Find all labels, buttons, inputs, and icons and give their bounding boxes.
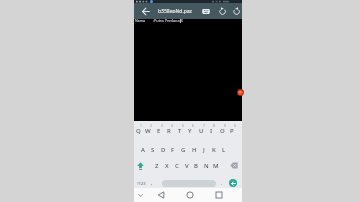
- button[interactable]: W: [143, 126, 153, 136]
- button[interactable]: S: [148, 145, 158, 155]
- button[interactable]: L: [219, 145, 229, 155]
- button[interactable]: ,: [148, 178, 156, 188]
- button[interactable]: [155, 189, 167, 201]
- button[interactable]: I: [206, 126, 216, 136]
- button[interactable]: V: [182, 161, 192, 171]
- staticText: V: [185, 162, 189, 170]
- button[interactable]: F: [168, 145, 178, 155]
- staticText: B: [194, 162, 198, 170]
- button[interactable]: [135, 160, 146, 171]
- staticText: ,: [151, 180, 153, 187]
- staticText: I: [210, 127, 213, 135]
- button[interactable]: Z: [152, 161, 162, 171]
- button[interactable]: X: [162, 161, 172, 171]
- button[interactable]: [200, 5, 212, 18]
- staticText: N: [204, 162, 209, 170]
- staticText: F: [171, 146, 175, 154]
- button[interactable]: Q: [133, 126, 143, 136]
- staticText: 4: [171, 124, 173, 128]
- button[interactable]: U: [196, 126, 206, 136]
- staticText: Nama: [135, 18, 146, 23]
- button[interactable]: A: [138, 145, 148, 155]
- button[interactable]: C: [172, 161, 182, 171]
- staticText: Y: [188, 127, 192, 135]
- staticText: 7: [203, 124, 205, 128]
- staticText: 3: [161, 124, 163, 128]
- staticText: 1: [140, 124, 142, 128]
- staticText: U: [199, 127, 204, 135]
- staticText: G: [181, 146, 186, 154]
- button[interactable]: H: [189, 145, 199, 155]
- button[interactable]: G: [178, 145, 188, 155]
- staticText: Z: [155, 162, 159, 170]
- button[interactable]: O: [217, 126, 227, 136]
- button[interactable]: [230, 5, 243, 18]
- staticText: b358eoNd.paz: [158, 8, 192, 15]
- button[interactable]: ?123: [135, 178, 148, 188]
- staticText: .: [221, 180, 223, 187]
- button[interactable]: [227, 160, 239, 171]
- staticText: D: [161, 146, 166, 154]
- staticText: 2: [150, 124, 152, 128]
- staticText: W: [145, 127, 151, 135]
- staticText: C: [175, 162, 179, 170]
- button[interactable]: B: [191, 161, 201, 171]
- staticText: :Putra Perdana 3: [153, 18, 183, 23]
- staticText: K: [212, 146, 216, 154]
- staticText: ?123: [137, 181, 146, 186]
- button[interactable]: [162, 180, 216, 187]
- staticText: P: [230, 127, 234, 135]
- button[interactable]: N: [201, 161, 211, 171]
- button[interactable]: R: [164, 126, 174, 136]
- staticText: T: [178, 127, 182, 135]
- button[interactable]: M: [211, 161, 221, 171]
- button[interactable]: E: [154, 126, 164, 136]
- staticText: A: [141, 146, 145, 154]
- button[interactable]: T: [175, 126, 185, 136]
- button[interactable]: [139, 5, 152, 18]
- button[interactable]: [213, 189, 225, 201]
- button[interactable]: [136, 189, 145, 201]
- staticText: O: [220, 127, 225, 135]
- button[interactable]: .: [218, 178, 226, 188]
- staticText: E: [157, 127, 161, 135]
- staticText: S: [151, 146, 155, 154]
- staticText: 5: [182, 124, 184, 128]
- button[interactable]: J: [199, 145, 209, 155]
- button[interactable]: Y: [185, 126, 195, 136]
- staticText: 8: [213, 124, 215, 128]
- staticText: Q: [136, 127, 141, 135]
- staticText: H: [192, 146, 197, 154]
- staticText: M: [213, 162, 219, 170]
- staticText: L: [222, 146, 226, 154]
- button[interactable]: P: [227, 126, 237, 136]
- staticText: 0: [234, 124, 236, 128]
- staticText: J: [203, 146, 205, 154]
- button[interactable]: K: [209, 145, 219, 155]
- button[interactable]: [216, 5, 229, 18]
- staticText: R: [167, 127, 171, 135]
- staticText: 9: [224, 124, 226, 128]
- button[interactable]: [184, 189, 196, 201]
- button[interactable]: [229, 179, 237, 187]
- staticText: X: [165, 162, 169, 170]
- button[interactable]: D: [158, 145, 168, 155]
- staticText: 6: [192, 124, 194, 128]
